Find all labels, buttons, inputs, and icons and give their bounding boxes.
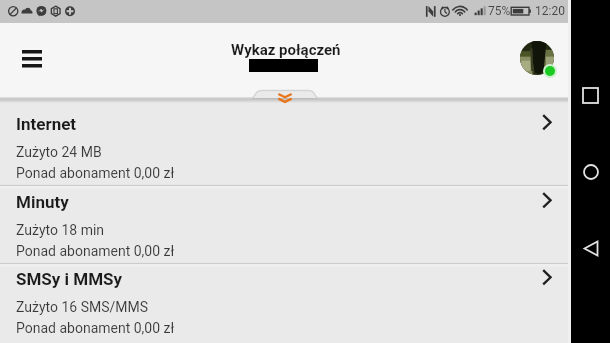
staticText: Ponad abonament 0,00 zł xyxy=(16,165,175,181)
button[interactable]: Recent apps xyxy=(571,80,610,111)
button[interactable]: Back xyxy=(571,233,610,264)
staticText: Zużyto 16 SMS/MMS xyxy=(16,299,149,315)
staticText: Zużyto 24 MB xyxy=(16,144,102,160)
staticText: SMSy i MMSy xyxy=(16,269,123,289)
staticText: 12:20 xyxy=(535,4,565,18)
button[interactable]: Home xyxy=(571,156,610,187)
button[interactable]: Profile xyxy=(520,41,554,75)
staticText: Zużyto 18 min xyxy=(16,222,105,238)
staticText: Internet xyxy=(16,114,77,134)
staticText: Ponad abonament 0,00 zł xyxy=(16,243,175,259)
staticText: Wykaz połączeń xyxy=(231,41,341,59)
staticText: Ponad abonament 0,00 zł xyxy=(16,320,175,336)
staticText: 75% xyxy=(488,4,511,18)
button[interactable]: Minuty xyxy=(0,189,568,262)
button[interactable]: Internet xyxy=(0,98,568,184)
staticText: Minuty xyxy=(16,192,69,212)
button[interactable]: Menu xyxy=(12,40,52,80)
button[interactable]: SMSy i MMSy xyxy=(0,267,568,343)
